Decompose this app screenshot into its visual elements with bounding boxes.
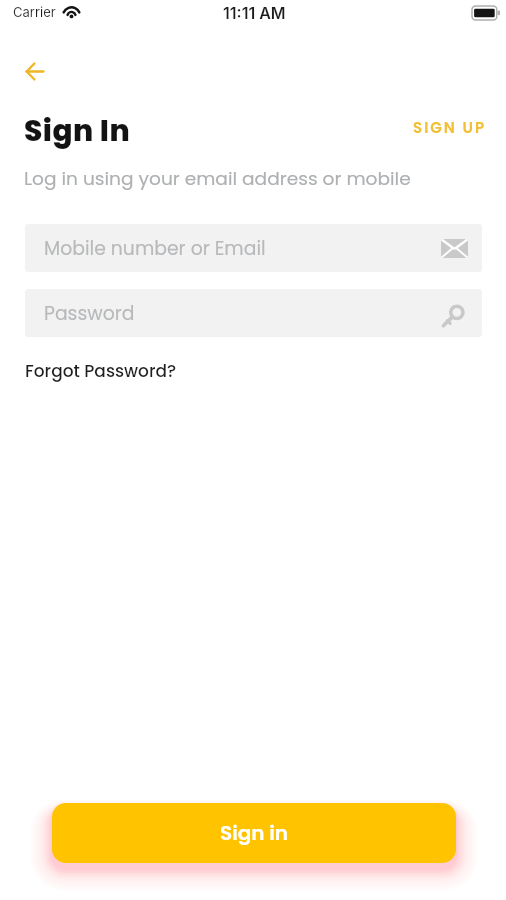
staticText: Mobile number or Email — [44, 235, 266, 261]
staticText: Log in using your email address or mobil… — [24, 165, 411, 191]
button[interactable]: Forgot Password? — [25, 359, 177, 383]
staticText: SIGN UP — [413, 117, 486, 138]
button[interactable]: Back — [12, 49, 57, 94]
staticText: Sign In — [24, 110, 131, 151]
staticText: Carrier — [13, 4, 56, 20]
staticText: 11:11 AM — [223, 3, 286, 22]
button[interactable]: Sign in — [52, 803, 456, 863]
staticText: Password — [44, 300, 135, 326]
staticText: Forgot Password? — [25, 359, 177, 383]
button[interactable]: SIGN UP — [407, 111, 492, 144]
button[interactable]: Mobile number or Email — [25, 224, 482, 272]
button[interactable]: Password — [25, 289, 482, 337]
staticText: Sign in — [220, 819, 289, 847]
